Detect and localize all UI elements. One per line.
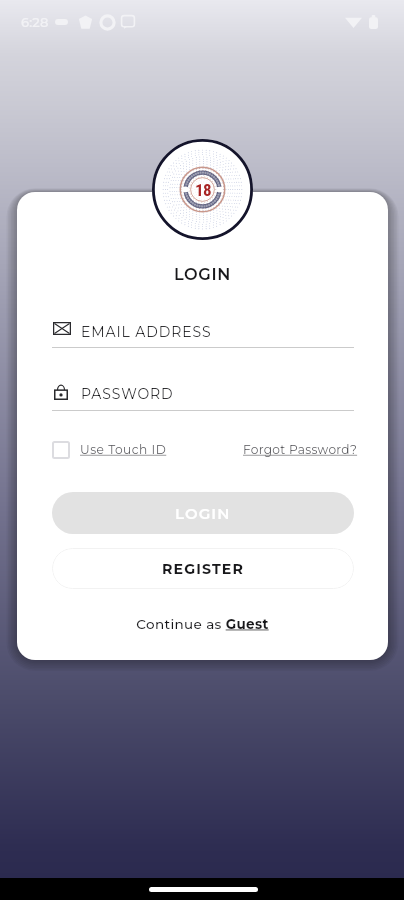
button[interactable]: Forgot Password? bbox=[243, 440, 358, 459]
button[interactable]: Continue as Guest bbox=[136, 616, 269, 632]
staticText: Use Touch ID bbox=[80, 442, 167, 457]
staticText: 6:28 bbox=[21, 14, 49, 30]
button[interactable]: Use Touch ID bbox=[52, 440, 167, 459]
staticText: LOGIN bbox=[174, 264, 231, 284]
staticText: EMAIL ADDRESS bbox=[81, 323, 212, 340]
button[interactable]: LOGIN bbox=[52, 492, 354, 534]
staticText: LOGIN bbox=[175, 504, 231, 522]
staticText: REGISTER bbox=[162, 560, 244, 577]
staticText: Forgot Password? bbox=[243, 442, 358, 457]
staticText: 18 bbox=[195, 180, 211, 200]
staticText: PASSWORD bbox=[81, 385, 174, 402]
staticText: Continue as Guest bbox=[136, 616, 269, 632]
button[interactable]: REGISTER bbox=[52, 548, 354, 589]
